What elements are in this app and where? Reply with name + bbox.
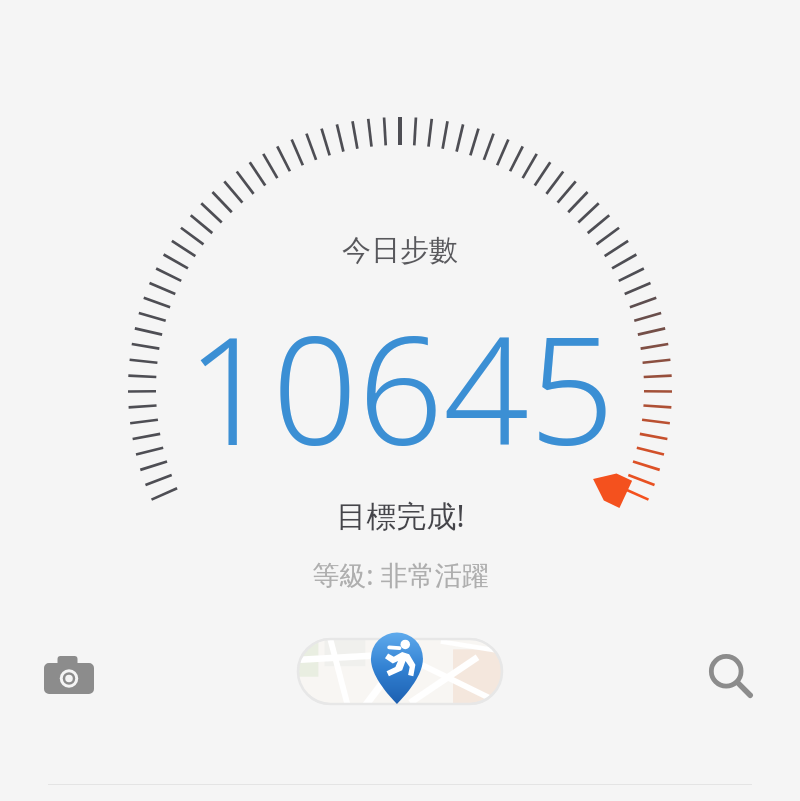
button[interactable]: Search: [688, 633, 774, 719]
staticText: 等級: 非常活躍: [312, 556, 489, 593]
staticText: 10645: [186, 285, 615, 489]
button[interactable]: Camera: [26, 633, 112, 719]
button[interactable]: Route map: [298, 639, 502, 704]
staticText: 目標完成!: [336, 495, 465, 536]
staticText: 今日步數: [342, 232, 458, 269]
